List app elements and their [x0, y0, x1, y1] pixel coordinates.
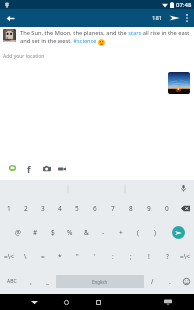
- button[interactable]: 6: [86, 196, 104, 220]
- button[interactable]: Back: [18, 294, 50, 310]
- staticText: 8: [129, 204, 133, 213]
- button[interactable]: %: [61, 220, 78, 244]
- button[interactable]: More options: [181, 12, 193, 24]
- button[interactable]: !: [140, 244, 158, 269]
- staticText: (: [137, 228, 139, 237]
- staticText: 2: [24, 204, 28, 213]
- staticText: =\<: [4, 252, 14, 261]
- button[interactable]: Voice input: [178, 183, 188, 193]
- button[interactable]: Add location: [7, 163, 18, 174]
- staticText: ?: [166, 252, 169, 261]
- button[interactable]: ,: [24, 269, 38, 294]
- staticText: f: [27, 163, 31, 174]
- button[interactable]: Backspace: [176, 196, 194, 220]
- button[interactable]: ABC: [0, 269, 24, 294]
- button[interactable]: Send tweet: [167, 11, 181, 25]
- button[interactable]: (: [129, 220, 146, 244]
- button[interactable]: Record video: [56, 163, 67, 174]
- button[interactable]: ": [68, 244, 86, 269]
- button[interactable]: &: [78, 220, 95, 244]
- button[interactable]: Emoji: [178, 269, 194, 294]
- button[interactable]: .: [161, 269, 178, 294]
- button[interactable]: 5: [68, 196, 86, 220]
- button[interactable]: 9: [140, 196, 158, 220]
- staticText: ": [76, 252, 79, 261]
- staticText: 5: [75, 204, 79, 213]
- button[interactable]: -: [95, 220, 112, 244]
- button[interactable]: \: [17, 244, 34, 269]
- staticText: 181: [152, 14, 163, 22]
- button[interactable]: ): [146, 220, 163, 244]
- button[interactable]: #: [27, 220, 44, 244]
- staticText: 3: [41, 204, 45, 213]
- staticText: =: [41, 252, 45, 261]
- staticText: !: [148, 252, 150, 261]
- button[interactable]: 2: [17, 196, 34, 220]
- button[interactable]: Add your location: [0, 53, 45, 60]
- button[interactable]: Profile picture: [3, 29, 16, 42]
- staticText: $: [51, 228, 55, 237]
- staticText: /: [151, 277, 154, 286]
- staticText: English: [92, 279, 108, 285]
- staticText: Add your location: [3, 53, 45, 60]
- staticText: :: [112, 252, 114, 261]
- button[interactable]: ?: [158, 244, 176, 269]
- staticText: *: [58, 252, 62, 261]
- button[interactable]: :: [104, 244, 122, 269]
- staticText: 07:48: [176, 1, 192, 9]
- staticText: 0: [165, 204, 169, 213]
- button[interactable]: =: [34, 244, 51, 269]
- button[interactable]: $: [44, 220, 61, 244]
- staticText: -: [102, 228, 105, 237]
- button[interactable]: =\<: [0, 244, 17, 269]
- staticText: &: [84, 228, 89, 237]
- button[interactable]: 8: [122, 196, 140, 220]
- staticText: 7: [111, 204, 115, 213]
- button[interactable]: 1: [0, 196, 17, 220]
- button[interactable]: Send: [163, 220, 194, 244]
- button[interactable]: 0: [158, 196, 176, 220]
- staticText: _: [46, 277, 49, 286]
- staticText: ;: [130, 252, 132, 261]
- staticText: @: [15, 228, 21, 237]
- staticText: .: [169, 277, 171, 286]
- button[interactable]: ;: [122, 244, 140, 269]
- button[interactable]: Attached photo: [168, 72, 190, 94]
- button[interactable]: Share on Facebook: [23, 163, 34, 174]
- button[interactable]: _: [38, 269, 56, 294]
- staticText: 1: [7, 204, 11, 213]
- staticText: ABC: [7, 278, 17, 285]
- button[interactable]: @: [9, 220, 27, 244]
- staticText: 4: [58, 204, 62, 213]
- button[interactable]: English: [56, 275, 144, 288]
- button[interactable]: /: [144, 269, 161, 294]
- staticText: =\<: [180, 252, 190, 261]
- staticText: \: [24, 252, 27, 261]
- staticText: %: [67, 228, 73, 237]
- staticText: 9: [147, 204, 151, 213]
- button[interactable]: 3: [34, 196, 51, 220]
- staticText: +: [119, 228, 123, 237]
- button[interactable]: *: [51, 244, 68, 269]
- button[interactable]: +: [112, 220, 129, 244]
- button[interactable]: Take photo: [41, 163, 52, 174]
- button[interactable]: 4: [51, 196, 68, 220]
- staticText: The Sun, the Moon, the planets, and the …: [20, 29, 192, 45]
- button[interactable]: =\<: [176, 244, 194, 269]
- staticText: ): [154, 228, 156, 237]
- button[interactable]: Hide keyboard: [152, 294, 184, 310]
- staticText: 6: [93, 204, 97, 213]
- button[interactable]: ': [86, 244, 104, 269]
- staticText: ,: [30, 277, 32, 286]
- staticText: #: [33, 228, 38, 237]
- button[interactable]: Back: [3, 11, 17, 25]
- button[interactable]: Recent apps: [82, 294, 114, 310]
- button[interactable]: 7: [104, 196, 122, 220]
- staticText: ': [94, 252, 96, 261]
- button[interactable]: Home: [50, 294, 82, 310]
